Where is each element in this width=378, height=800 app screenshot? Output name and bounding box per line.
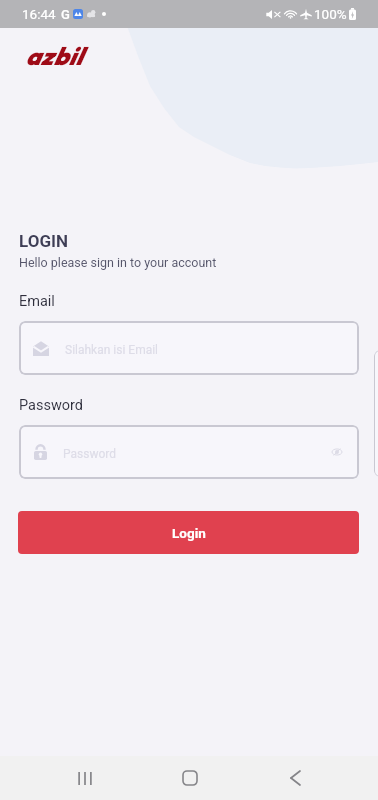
button[interactable]: Show password	[332, 448, 342, 456]
staticText: LOGIN	[19, 231, 68, 251]
button[interactable]: Login	[18, 511, 359, 554]
staticText: Login	[172, 525, 206, 541]
staticText: Email	[19, 293, 55, 310]
button[interactable]: Password	[19, 425, 359, 479]
staticText: azbil	[25, 40, 82, 71]
staticText: Silahkan isi Email	[65, 343, 159, 357]
staticText: Password	[63, 447, 117, 461]
button[interactable]: Silahkan isi Email	[19, 321, 359, 375]
button[interactable]: Home	[163, 756, 216, 800]
staticText: 16:44	[22, 6, 56, 22]
staticText: Password	[19, 397, 84, 414]
button[interactable]: Recents	[58, 756, 111, 800]
staticText: Hello please sign in to your account	[19, 255, 217, 270]
button[interactable]: Back	[269, 756, 322, 800]
staticText: G	[61, 7, 70, 22]
staticText: 100%	[314, 6, 347, 22]
